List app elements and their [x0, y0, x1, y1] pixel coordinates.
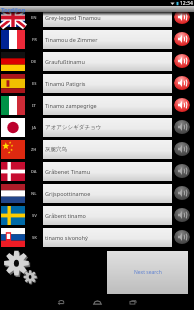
staticText: SK: [32, 235, 37, 240]
staticText: Grey-legged Tinamou: [45, 14, 101, 21]
button[interactable]: Play pronunciation: [174, 9, 190, 25]
staticText: DE: [31, 59, 37, 64]
staticText: IT: [32, 103, 36, 108]
button[interactable]: NL: [0, 182, 194, 204]
button[interactable]: Settings: [2, 248, 40, 286]
staticText: アオアシシギダチョウ: [45, 124, 102, 131]
staticText: FR: [32, 37, 37, 42]
staticText: Tinamú Patigris: [45, 80, 86, 87]
staticText: Tinamou de Zimmer: [45, 36, 98, 43]
staticText: Gråbent tinamo: [45, 212, 86, 219]
button[interactable]: Play pronunciation: [174, 141, 190, 157]
staticText: Tinamo zampegrige: [45, 102, 97, 109]
button[interactable]: DE: [0, 50, 194, 72]
button[interactable]: Play pronunciation: [174, 163, 190, 179]
staticText: SV: [32, 213, 37, 218]
staticText: Graufußtinamu: [45, 58, 85, 65]
staticText: Grijspoottinamoe: [45, 190, 91, 197]
staticText: EN: [31, 15, 37, 20]
button[interactable]: Play pronunciation: [174, 185, 190, 201]
staticText: DA: [31, 169, 37, 174]
button[interactable]: ES: [0, 72, 194, 94]
button[interactable]: FR: [0, 28, 194, 50]
button[interactable]: Play pronunciation: [174, 53, 190, 69]
button[interactable]: SK: [0, 226, 194, 248]
staticText: NL: [31, 191, 37, 196]
button[interactable]: DA: [0, 160, 194, 182]
button[interactable]: IT: [0, 94, 194, 116]
button[interactable]: Play pronunciation: [174, 207, 190, 223]
staticText: tinamo sivonohý: [45, 234, 88, 241]
button[interactable]: Back: [43, 294, 79, 310]
button[interactable]: EN: [0, 6, 194, 28]
button[interactable]: JA: [0, 116, 194, 138]
button[interactable]: Next search: [107, 251, 188, 294]
staticText: ZH: [31, 147, 37, 152]
button[interactable]: Home: [79, 294, 115, 310]
button[interactable]: Play pronunciation: [174, 119, 190, 135]
button[interactable]: Play pronunciation: [174, 97, 190, 113]
staticText: ES: [32, 81, 37, 86]
staticText: Tordilon: [1, 6, 26, 14]
button[interactable]: ZH: [0, 138, 194, 160]
button[interactable]: Play pronunciation: [174, 75, 190, 91]
staticText: JA: [32, 125, 37, 130]
button[interactable]: SV: [0, 204, 194, 226]
staticText: 12:34: [180, 0, 193, 6]
button[interactable]: Recent apps: [115, 294, 151, 310]
button[interactable]: Play pronunciation: [174, 31, 190, 47]
staticText: Next search: [134, 269, 162, 276]
staticText: 灰腿穴鸟: [45, 146, 67, 153]
button[interactable]: Play pronunciation: [174, 229, 190, 245]
staticText: Gråbenet Tinamu: [45, 168, 91, 175]
